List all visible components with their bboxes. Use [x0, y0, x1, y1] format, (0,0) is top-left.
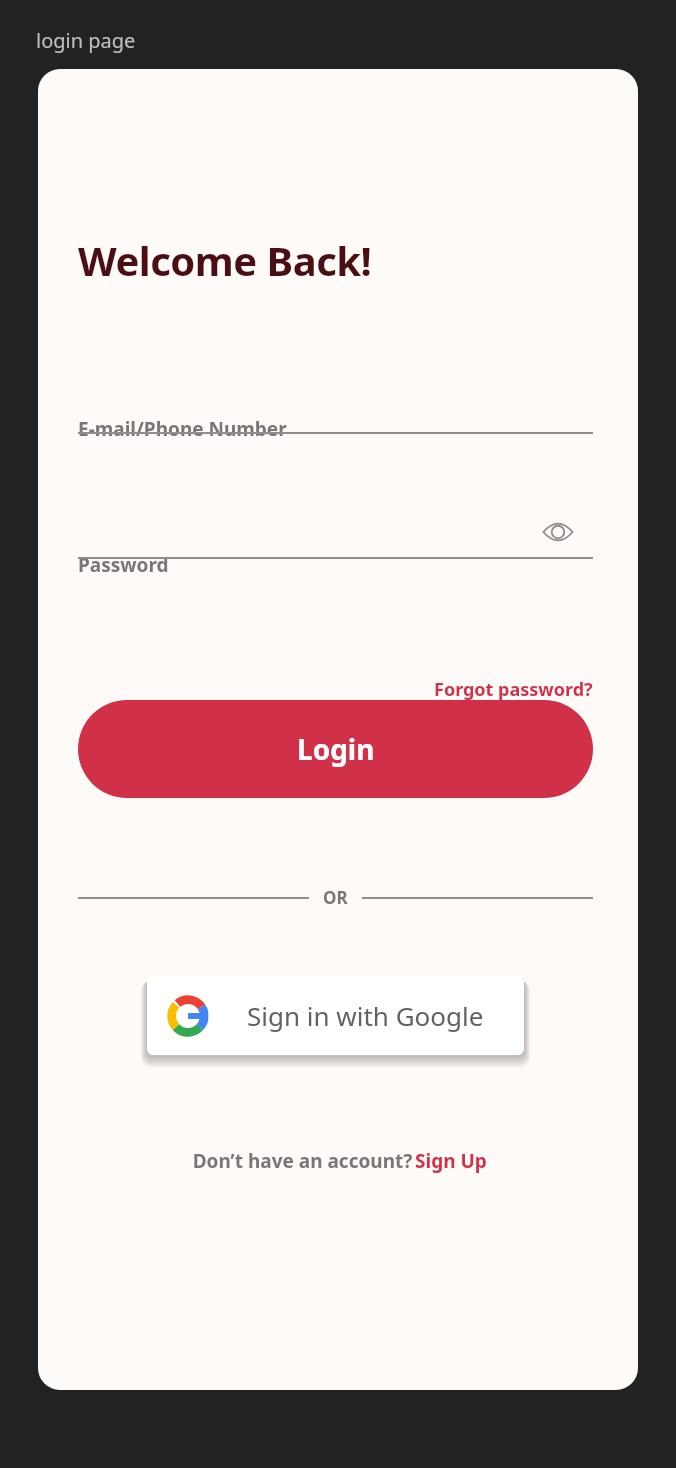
staticText: Sign Up	[415, 1148, 487, 1174]
staticText: E-mail/Phone Number	[78, 416, 287, 442]
staticText: Don’t have an account?	[190, 1148, 415, 1174]
staticText: OR	[323, 886, 348, 909]
button[interactable]: Sign in with Google	[147, 976, 524, 1055]
button[interactable]: Forgot password?	[413, 669, 593, 709]
staticText: Forgot password?	[434, 677, 593, 702]
button[interactable]	[78, 432, 593, 502]
button[interactable]: Show password	[537, 511, 579, 553]
button[interactable]: Sign Up	[415, 1148, 487, 1174]
staticText: Welcome Back!	[78, 233, 372, 287]
button[interactable]: Login	[78, 700, 593, 798]
button[interactable]	[78, 489, 593, 557]
staticText: Sign in with Google	[247, 998, 484, 1033]
staticText: Login	[297, 730, 375, 768]
staticText: Password	[78, 552, 169, 578]
staticText: login page	[36, 27, 136, 54]
